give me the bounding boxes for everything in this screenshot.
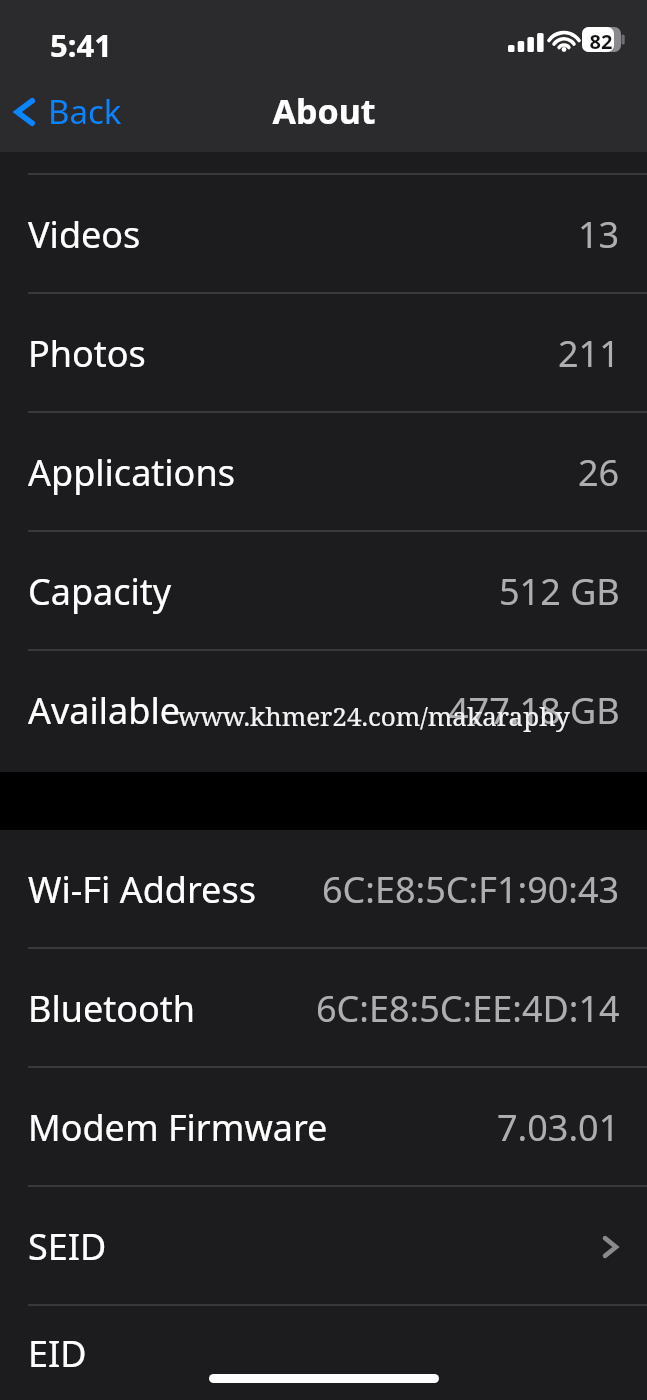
button[interactable]: Modem Firmware	[0, 1068, 647, 1187]
staticText: 5:41	[50, 24, 112, 66]
staticText: 13	[578, 210, 620, 259]
staticText: 26	[578, 448, 620, 497]
staticText: SEID	[28, 1222, 107, 1271]
button[interactable]: Bluetooth	[0, 949, 647, 1068]
other: Open SEID	[600, 1230, 620, 1264]
staticText: 512 GB	[499, 567, 620, 616]
staticText: Photos	[28, 329, 146, 378]
button[interactable]: EID	[0, 1306, 647, 1400]
staticText: Available	[28, 686, 180, 735]
button[interactable]: Applications	[0, 413, 647, 532]
staticText: 477.18 GB	[448, 686, 620, 735]
staticText: 6C:E8:5C:F1:90:43	[322, 865, 620, 914]
button[interactable]: Capacity	[0, 532, 647, 651]
staticText: 7.03.01	[497, 1103, 620, 1152]
staticText: Videos	[28, 210, 141, 259]
button[interactable]: Available	[0, 651, 647, 770]
button[interactable]: Videos	[0, 175, 647, 294]
staticText: Bluetooth	[28, 984, 196, 1033]
staticText: Wi-Fi Address	[28, 865, 256, 914]
staticText: 6C:E8:5C:EE:4D:14	[316, 984, 620, 1033]
staticText: Back	[48, 89, 122, 134]
staticText: Capacity	[28, 567, 172, 616]
staticText: 211	[558, 329, 620, 378]
staticText: 82	[586, 28, 616, 55]
button[interactable]: Wi-Fi Address	[0, 830, 647, 949]
button[interactable]: Back	[0, 85, 134, 138]
button[interactable]: SEID	[0, 1187, 647, 1306]
staticText: EID	[28, 1329, 87, 1378]
staticText: Applications	[28, 448, 235, 497]
staticText: www.khmer24.com/makaraphy	[178, 698, 570, 733]
staticText: Modem Firmware	[28, 1103, 328, 1152]
staticText: About	[272, 88, 376, 134]
button[interactable]: Photos	[0, 294, 647, 413]
